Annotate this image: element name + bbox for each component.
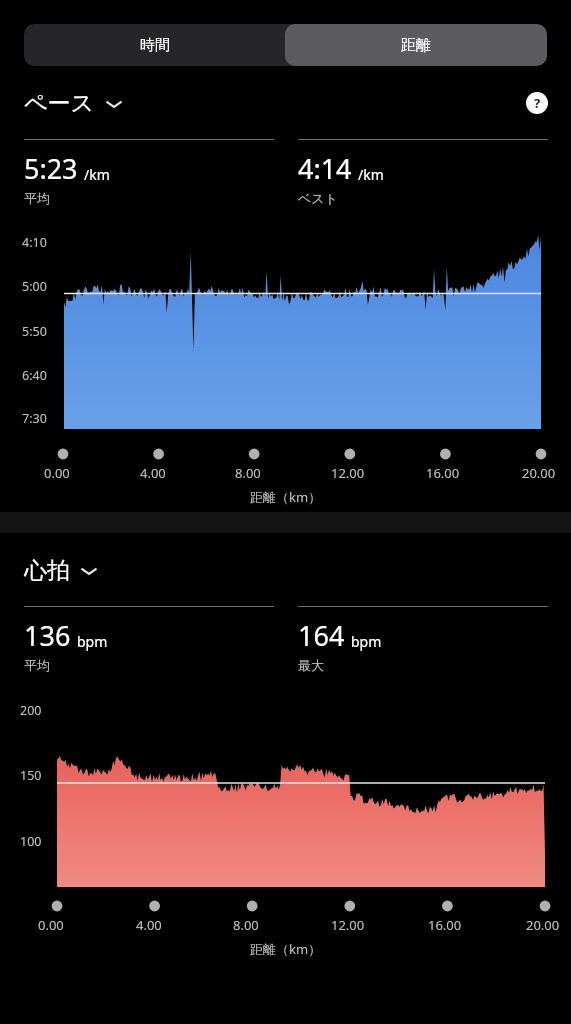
staticText: 100 (20, 833, 42, 850)
staticText: 平均 (24, 657, 50, 673)
staticText: 時間 (140, 36, 170, 55)
staticText: 0.00 (44, 464, 70, 482)
staticText: 7:30 (22, 410, 47, 427)
staticText: ペース (24, 89, 95, 118)
staticText: 8.00 (235, 464, 261, 482)
button[interactable]: 164 (298, 606, 548, 673)
staticText: 16.00 (426, 464, 460, 482)
staticText: 4:14 (298, 150, 352, 187)
staticText: /km (84, 165, 110, 184)
staticText: 距離（km） (250, 488, 322, 506)
staticText: 8.00 (233, 916, 259, 934)
button[interactable]: 136 (24, 606, 274, 673)
button[interactable]: 心拍 (24, 554, 104, 587)
staticText: 20.00 (526, 916, 560, 934)
staticText: 距離（km） (250, 940, 322, 958)
staticText: 16.00 (428, 916, 462, 934)
staticText: 5:50 (22, 323, 47, 340)
staticText: 20.00 (522, 464, 556, 482)
staticText: ベスト (298, 190, 338, 206)
staticText: 6:40 (22, 367, 47, 384)
button[interactable]: 距離 (285, 24, 547, 66)
staticText: 150 (20, 767, 42, 784)
staticText: 4.00 (136, 916, 162, 934)
staticText: 4:10 (22, 234, 47, 251)
staticText: ? (534, 94, 541, 112)
staticText: /km (358, 165, 384, 184)
staticText: 距離 (401, 36, 431, 55)
button[interactable]: 時間 (24, 24, 285, 66)
staticText: bpm (77, 632, 108, 651)
staticText: 最大 (298, 657, 324, 673)
staticText: 136 (24, 617, 71, 654)
staticText: bpm (351, 632, 382, 651)
staticText: 12.00 (331, 464, 365, 482)
staticText: 12.00 (331, 916, 365, 934)
staticText: 5:00 (22, 278, 47, 295)
staticText: 4.00 (140, 464, 166, 482)
button[interactable]: 5:23 (24, 139, 274, 206)
staticText: 5:23 (24, 150, 78, 187)
button[interactable]: ペース (24, 87, 129, 120)
staticText: 平均 (24, 190, 50, 206)
button[interactable]: Help (525, 91, 549, 115)
staticText: 164 (298, 617, 345, 654)
staticText: 0.00 (38, 916, 64, 934)
staticText: 200 (20, 702, 42, 719)
button[interactable]: 4:14 (298, 139, 548, 206)
staticText: 心拍 (24, 556, 70, 585)
